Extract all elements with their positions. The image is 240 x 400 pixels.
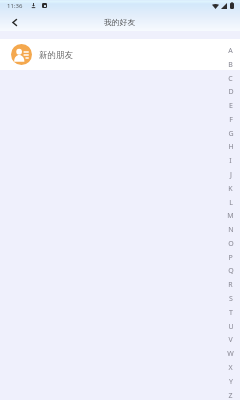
staticText: Q	[228, 266, 234, 276]
staticText: H	[228, 142, 234, 152]
button[interactable]: S	[224, 292, 237, 306]
staticText: P	[228, 253, 233, 263]
staticText: F	[229, 115, 233, 125]
button[interactable]: B	[224, 58, 237, 72]
staticText: O	[228, 239, 234, 249]
button[interactable]: C	[224, 72, 237, 86]
staticText: Y	[229, 377, 233, 387]
button[interactable]: V	[224, 333, 237, 347]
staticText: E	[229, 101, 233, 111]
button[interactable]: A	[224, 44, 237, 58]
staticText: T	[229, 308, 233, 318]
staticText: L	[229, 198, 233, 208]
button[interactable]: Back	[0, 15, 26, 31]
staticText: C	[228, 74, 233, 84]
staticText: R	[228, 280, 233, 290]
staticText: G	[228, 129, 234, 139]
button[interactable]: U	[224, 320, 237, 334]
staticText: W	[227, 349, 234, 359]
button[interactable]: O	[224, 237, 237, 251]
staticText: X	[228, 363, 233, 373]
button[interactable]: E	[224, 99, 237, 113]
button[interactable]: I	[224, 154, 237, 168]
button[interactable]: R	[224, 278, 237, 292]
button[interactable]: Q	[224, 264, 237, 278]
button[interactable]: F	[224, 113, 237, 127]
button[interactable]: W	[224, 347, 237, 361]
staticText: K	[228, 184, 233, 194]
button[interactable]: G	[224, 127, 237, 141]
staticText: A	[228, 46, 233, 56]
button[interactable]: J	[224, 168, 237, 182]
button[interactable]: P	[224, 251, 237, 265]
button[interactable]: Z	[224, 389, 237, 400]
button[interactable]: 新的朋友	[0, 39, 240, 70]
button[interactable]: H	[224, 140, 237, 154]
staticText: 我的好友	[104, 17, 136, 27]
staticText: J	[230, 170, 232, 180]
button[interactable]: N	[224, 223, 237, 237]
staticText: D	[228, 87, 234, 97]
staticText: I	[229, 156, 232, 166]
button[interactable]: M	[224, 209, 237, 223]
staticText: V	[228, 335, 233, 345]
staticText: 11:36	[7, 2, 23, 10]
button[interactable]: L	[224, 196, 237, 210]
button[interactable]: K	[224, 182, 237, 196]
staticText: N	[228, 225, 234, 235]
button[interactable]: X	[224, 361, 237, 375]
staticText: M	[227, 211, 234, 221]
button[interactable]: T	[224, 306, 237, 320]
staticText: U	[228, 322, 234, 332]
staticText: B	[228, 60, 233, 70]
button[interactable]: D	[224, 85, 237, 99]
staticText: 新的朋友	[39, 50, 73, 61]
staticText: Z	[228, 391, 233, 400]
staticText: S	[229, 294, 233, 304]
button[interactable]: Y	[224, 375, 237, 389]
